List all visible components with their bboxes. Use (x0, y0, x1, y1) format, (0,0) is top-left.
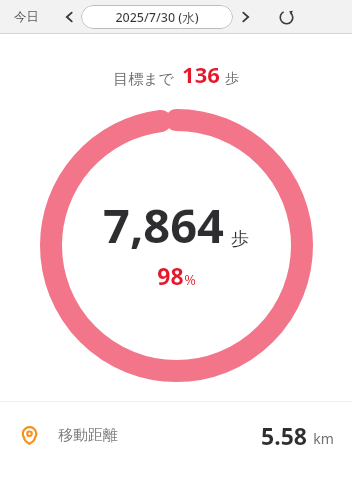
button[interactable]: 今日 (0, 4, 53, 30)
staticText: % (184, 270, 196, 289)
staticText: 移動距離 (58, 426, 118, 445)
staticText: 5.58 (261, 420, 307, 451)
staticText: 目標まで (113, 70, 174, 89)
staticText: 2025/7/30 (水) (115, 9, 199, 26)
staticText: 98 (157, 260, 184, 291)
button[interactable]: Previous day (57, 2, 81, 32)
staticText: 歩 (231, 228, 249, 251)
staticText: 7,864 (103, 193, 224, 257)
staticText: 今日 (14, 9, 39, 25)
button[interactable]: Next day (233, 2, 259, 32)
staticText: 136 (182, 59, 220, 89)
button[interactable]: 2025/7/30 (水) (81, 5, 233, 29)
button[interactable]: 移動距離 (0, 402, 352, 468)
staticText: 歩 (225, 70, 239, 88)
staticText: km (313, 429, 334, 448)
button[interactable]: Refresh (271, 2, 301, 32)
